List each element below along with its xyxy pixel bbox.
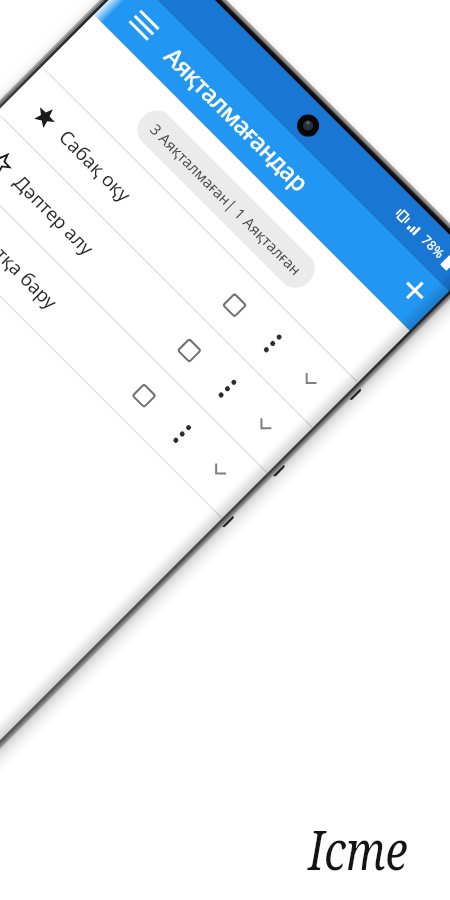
staticText: Дәптер алу xyxy=(8,169,100,261)
button[interactable] xyxy=(120,1,168,49)
button[interactable] xyxy=(387,262,443,319)
staticText: 3 Аяқталмаған| 1 Аяқталған xyxy=(146,119,306,279)
button[interactable] xyxy=(29,99,63,133)
button[interactable]: 3 Аяқталмаған| 1 Аяқталған xyxy=(130,103,322,295)
staticText: Сыртқа бару xyxy=(0,215,63,315)
button[interactable] xyxy=(249,410,280,441)
button[interactable] xyxy=(131,383,157,408)
button[interactable] xyxy=(203,455,234,486)
staticText: Аяқталмағандар xyxy=(157,39,316,198)
staticText: Істе xyxy=(308,812,408,886)
button[interactable] xyxy=(177,338,202,363)
button[interactable] xyxy=(294,365,325,396)
button[interactable] xyxy=(214,375,241,402)
staticText: Сабақ оқу xyxy=(53,124,137,208)
button[interactable] xyxy=(169,420,196,447)
button[interactable]: Сабақ оқу xyxy=(0,67,358,427)
button[interactable] xyxy=(0,145,17,179)
button[interactable]: Дәптер алу xyxy=(0,112,312,473)
button[interactable]: Сыртқа бару xyxy=(0,157,267,518)
staticText: 78% xyxy=(418,231,449,262)
button[interactable] xyxy=(222,292,247,318)
button[interactable] xyxy=(259,330,286,357)
